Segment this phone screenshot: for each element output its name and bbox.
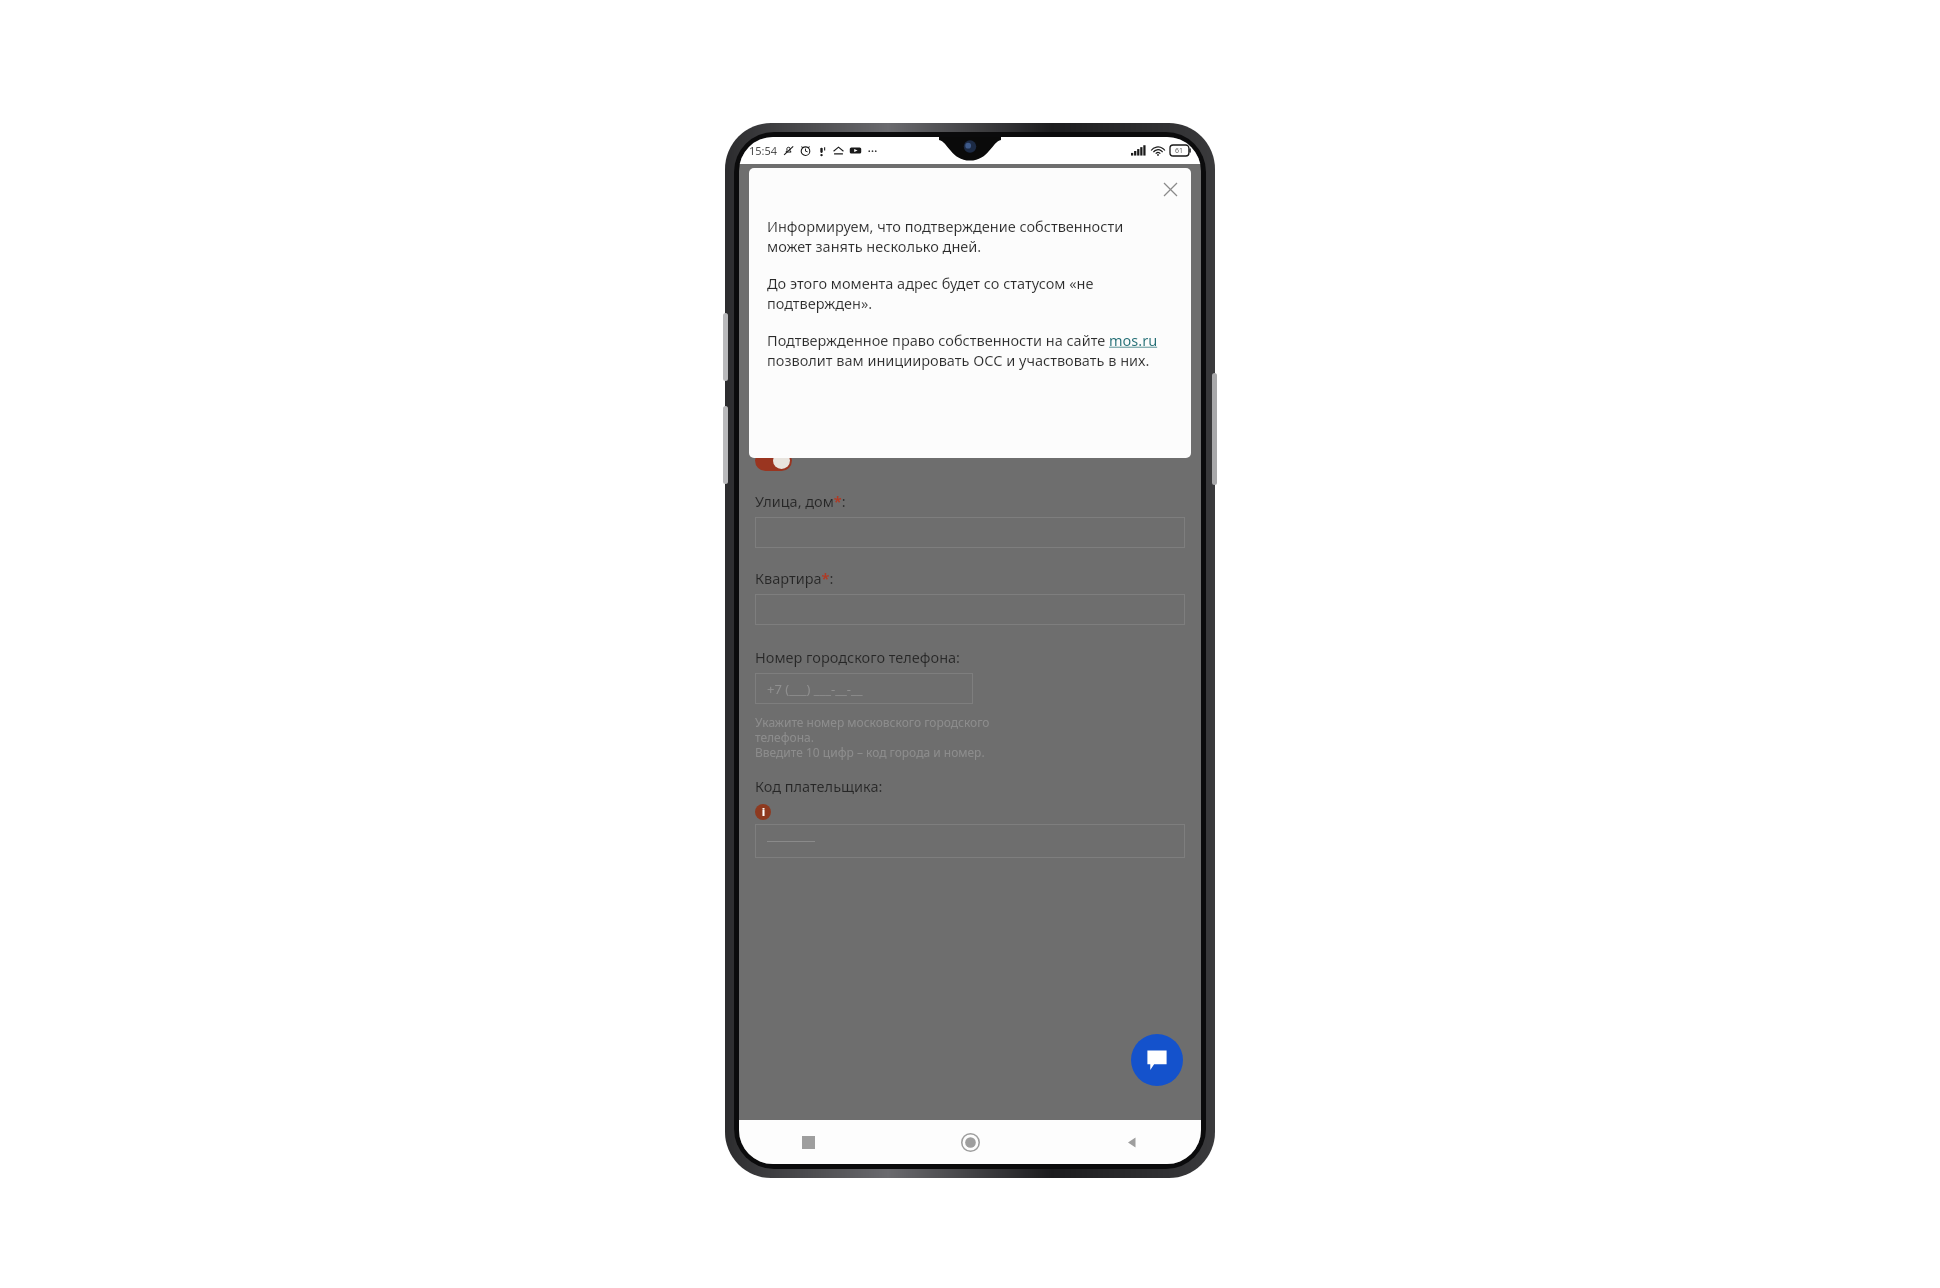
staticText: 61	[1175, 146, 1184, 156]
staticText: Улица, дом*:	[755, 491, 846, 511]
button[interactable]	[755, 824, 1185, 858]
staticText: +7 (___) ___-__-__	[767, 680, 863, 698]
button[interactable]: +7 (___) ___-__-__	[755, 673, 973, 704]
button[interactable]: Чат поддержки	[1131, 1034, 1183, 1086]
button[interactable]: Главный экран	[953, 1125, 987, 1159]
button[interactable]: Информация о коде плательщика	[755, 804, 771, 820]
staticText: i	[762, 805, 765, 819]
button[interactable]: Назад	[1115, 1125, 1149, 1159]
button[interactable]	[755, 594, 1185, 625]
staticText: Код плательщика:	[755, 776, 883, 796]
staticText: Номер городского телефона:	[755, 647, 960, 667]
staticText: Квартира*:	[755, 568, 834, 588]
staticText: До этого момента адрес будет со статусом…	[767, 273, 1171, 313]
staticText: Новый адрес	[916, 165, 1025, 188]
staticText: 15:54	[749, 143, 778, 158]
staticText: Информируем, что подтверждение собственн…	[767, 216, 1171, 256]
staticText: Подтвержденное право собственности на са…	[767, 330, 1171, 370]
button[interactable]	[755, 517, 1185, 548]
button[interactable]: Закрыть	[1157, 176, 1183, 202]
button[interactable]: Переключатель собственности	[755, 450, 792, 471]
button[interactable]: Недавние приложения	[791, 1125, 825, 1159]
staticText: Укажите номер московского городского тел…	[755, 714, 990, 760]
